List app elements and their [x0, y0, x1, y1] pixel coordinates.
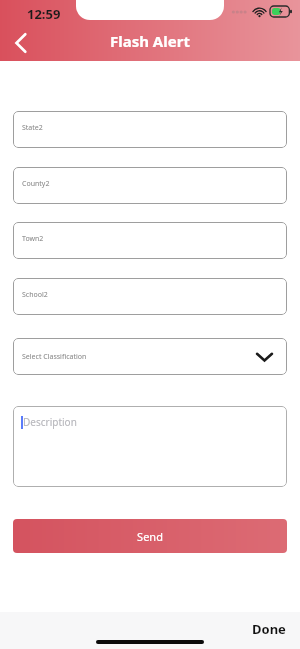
button[interactable]: Done — [238, 614, 300, 644]
staticText: 12:59 — [27, 5, 61, 23]
staticText: Town2 — [22, 234, 44, 244]
staticText: School2 — [22, 290, 48, 300]
staticText: Select Classification — [22, 352, 87, 362]
button[interactable]: Description — [13, 406, 287, 487]
button[interactable]: County2 — [13, 167, 287, 204]
button[interactable]: Select Classification — [13, 338, 287, 375]
button[interactable]: Send — [13, 519, 287, 553]
staticText: Send — [137, 529, 163, 544]
staticText: Done — [252, 620, 286, 638]
staticText: Flash Alert — [110, 31, 190, 51]
button[interactable]: State2 — [13, 111, 287, 148]
button[interactable]: Back — [0, 26, 42, 60]
button[interactable]: Town2 — [13, 222, 287, 259]
button[interactable]: School2 — [13, 278, 287, 315]
staticText: Description — [23, 415, 77, 429]
staticText: County2 — [22, 179, 50, 189]
staticText: State2 — [22, 123, 43, 133]
